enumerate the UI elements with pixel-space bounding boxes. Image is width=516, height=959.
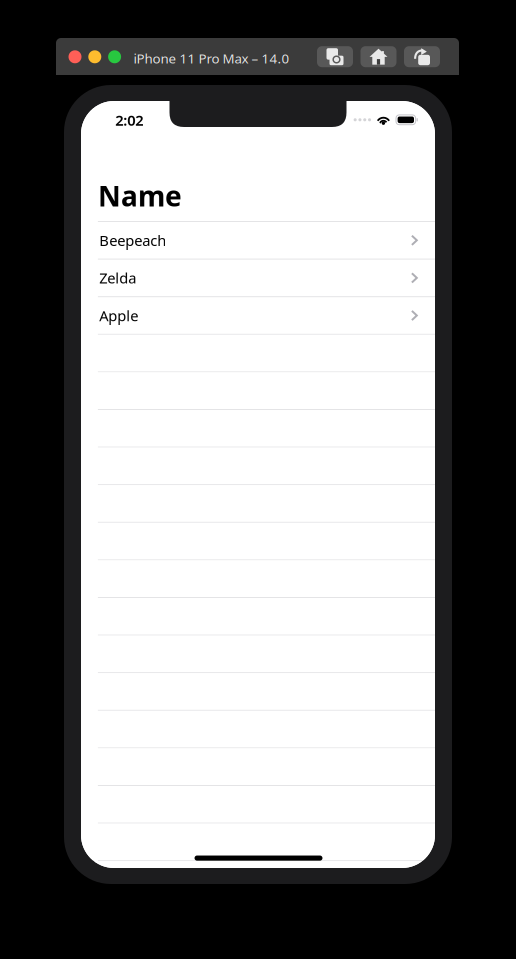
- button[interactable]: Take screenshot: [317, 46, 353, 67]
- button[interactable]: Zelda: [81, 259, 435, 296]
- button[interactable]: Apple: [81, 296, 435, 334]
- button[interactable]: Minimize window: [88, 50, 101, 63]
- staticText: Apple: [99, 306, 138, 325]
- staticText: iPhone 11 Pro Max – 14.0: [133, 49, 289, 67]
- staticText: 2:02: [115, 110, 143, 130]
- button[interactable]: Zoom window: [108, 50, 121, 63]
- staticText: Zelda: [99, 268, 136, 288]
- button[interactable]: Home: [360, 46, 396, 67]
- button[interactable]: Close window: [68, 50, 81, 63]
- staticText: Name: [98, 177, 182, 214]
- button[interactable]: Share: [404, 46, 440, 67]
- button[interactable]: Beepeach: [81, 221, 435, 259]
- staticText: Beepeach: [99, 231, 166, 250]
